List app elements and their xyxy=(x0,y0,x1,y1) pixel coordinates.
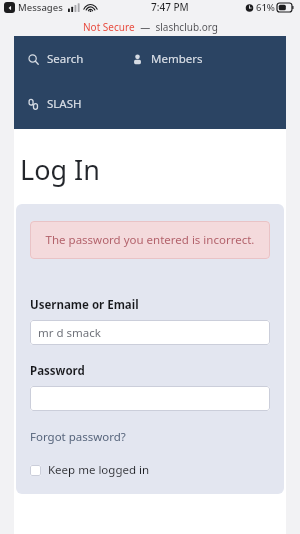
staticText: 61% xyxy=(256,1,275,14)
staticText: The password you entered is incorrect. xyxy=(40,232,260,248)
staticText: mr d smack xyxy=(38,325,101,341)
staticText: Messages xyxy=(18,1,63,14)
staticText: Forgot password? xyxy=(30,429,126,445)
button[interactable] xyxy=(30,386,270,411)
staticText: Keep me logged in xyxy=(48,462,150,478)
button[interactable]: SLASH xyxy=(28,87,94,121)
button[interactable]: Forgot password? xyxy=(30,429,126,445)
button[interactable]: mr d smack xyxy=(30,320,270,345)
button[interactable]: Keep me logged in xyxy=(30,462,150,478)
staticText: Password xyxy=(30,363,85,379)
staticText: — slashclub.org xyxy=(135,20,218,34)
button[interactable]: Back to Messages xyxy=(4,2,15,13)
button[interactable]: Search xyxy=(28,42,90,76)
staticText: SLASH xyxy=(47,96,82,112)
button[interactable]: Not Secure xyxy=(0,18,300,36)
staticText: Search xyxy=(47,51,84,67)
staticText: Members xyxy=(151,51,203,67)
button[interactable]: Members xyxy=(132,42,210,76)
staticText: Not Secure xyxy=(83,20,135,34)
staticText: 7:47 PM xyxy=(151,0,189,14)
staticText: Username or Email xyxy=(30,297,139,313)
staticText: Log In xyxy=(20,151,100,188)
